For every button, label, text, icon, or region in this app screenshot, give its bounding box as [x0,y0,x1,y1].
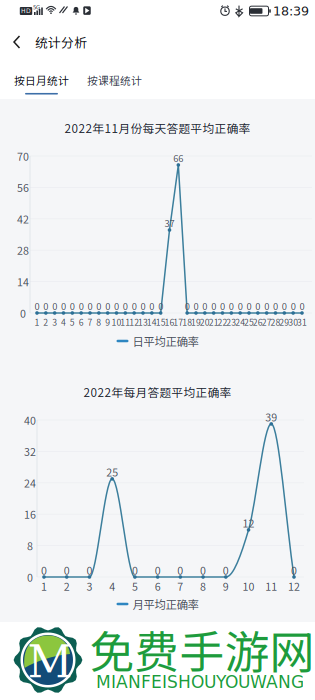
staticText: 20 [200,316,210,328]
staticText: 月平均正确率 [132,596,198,612]
staticText: 2022年11月份每天答题平均正确率 [64,119,250,136]
staticText: 0 [86,562,92,578]
staticText: 0 [264,299,269,313]
button[interactable]: 按日月统计 [5,66,78,94]
staticText: 30 [288,316,298,328]
staticText: 4 [61,316,66,328]
staticText: 29 [279,316,289,328]
staticText: 6 [79,316,84,328]
staticText: 40 [24,412,36,428]
staticText: 2022年每月答题平均正确率 [83,383,231,400]
staticText: 0 [105,299,110,313]
staticText: 10 [111,316,121,328]
staticText: 0 [299,299,304,313]
staticText: 5 [132,578,138,594]
staticText: 42 [17,211,29,226]
staticText: 0 [193,299,198,313]
staticText: 1 [34,316,39,328]
staticText: 0 [177,562,183,578]
staticText: 0 [123,299,128,313]
staticText: 18 [182,316,192,328]
staticText: 0 [291,299,296,313]
staticText: 1 [41,578,47,594]
staticText: 3 [52,316,57,328]
staticText: 37 [164,216,174,230]
staticText: 31 [297,316,307,328]
staticText: 0 [238,299,243,313]
staticText: 21 [209,316,219,328]
staticText: 按日月统计 [14,72,69,88]
staticText: 0 [246,299,251,313]
staticText: 按课程统计 [87,72,142,88]
staticText: 0 [223,562,229,578]
staticText: 26 [253,316,263,328]
staticText: 11 [265,578,277,594]
staticText: 0 [149,299,154,313]
staticText: 4 [109,578,115,594]
staticText: 0 [220,299,225,313]
staticText: 0 [79,299,84,313]
staticText: 9 [223,578,229,594]
staticText: 0 [291,562,297,578]
staticText: 0 [61,299,66,313]
staticText: 0 [132,562,138,578]
staticText: M [27,636,72,688]
staticText: 0 [158,299,163,313]
staticText: 19 [191,316,201,328]
staticText: 12 [129,316,139,328]
staticText: 32 [24,444,36,459]
staticText: 66 [173,151,183,165]
staticText: 24 [235,316,245,328]
staticText: 22 [217,316,227,328]
staticText: 2 [43,316,48,328]
staticText: 0 [282,299,287,313]
staticText: 0 [255,299,260,313]
staticText: 0 [132,299,137,313]
staticText: 0 [27,569,33,585]
staticText: 7 [177,578,183,594]
staticText: 9 [105,316,110,328]
staticText: 免费手游网 [89,617,314,681]
staticText: 8 [200,578,206,594]
staticText: 0 [70,299,75,313]
staticText: 25 [244,316,254,328]
staticText: 0 [202,299,207,313]
staticText: 12 [242,515,254,531]
staticText: 25 [106,464,118,480]
staticText: 11 [120,316,130,328]
staticText: 16 [24,506,36,522]
staticText: HD [21,7,31,14]
staticText: 5 [70,316,75,328]
staticText: 3 [86,578,92,594]
staticText: 23 [226,316,236,328]
staticText: 39 [265,409,277,425]
staticText: 28 [17,242,29,258]
staticText: 0 [155,562,161,578]
staticText: 13 [138,316,148,328]
staticText: 0 [211,299,216,313]
staticText: 8 [96,316,101,328]
staticText: 14 [17,274,29,289]
staticText: 18:39 [273,4,309,18]
staticText: 5G [33,4,40,11]
staticText: 0 [229,299,234,313]
staticText: 统计分析 [35,33,87,51]
staticText: 14 [147,316,157,328]
staticText: 0 [64,562,70,578]
staticText: 70 [17,148,29,164]
staticText: 27 [262,316,272,328]
button[interactable]: 按课程统计 [78,66,151,94]
staticText: 56 [17,180,29,195]
staticText: 0 [34,299,39,313]
staticText: 24 [24,475,36,490]
staticText: 0 [52,299,57,313]
staticText: 28 [270,316,280,328]
staticText: 12 [288,578,300,594]
staticText: 0 [43,299,48,313]
staticText: 7 [87,316,92,328]
staticText: 0 [41,562,47,578]
staticText: 0 [96,299,101,313]
staticText: 8 [27,538,33,553]
staticText: 2 [64,578,70,594]
button[interactable]: Back [12,34,24,50]
